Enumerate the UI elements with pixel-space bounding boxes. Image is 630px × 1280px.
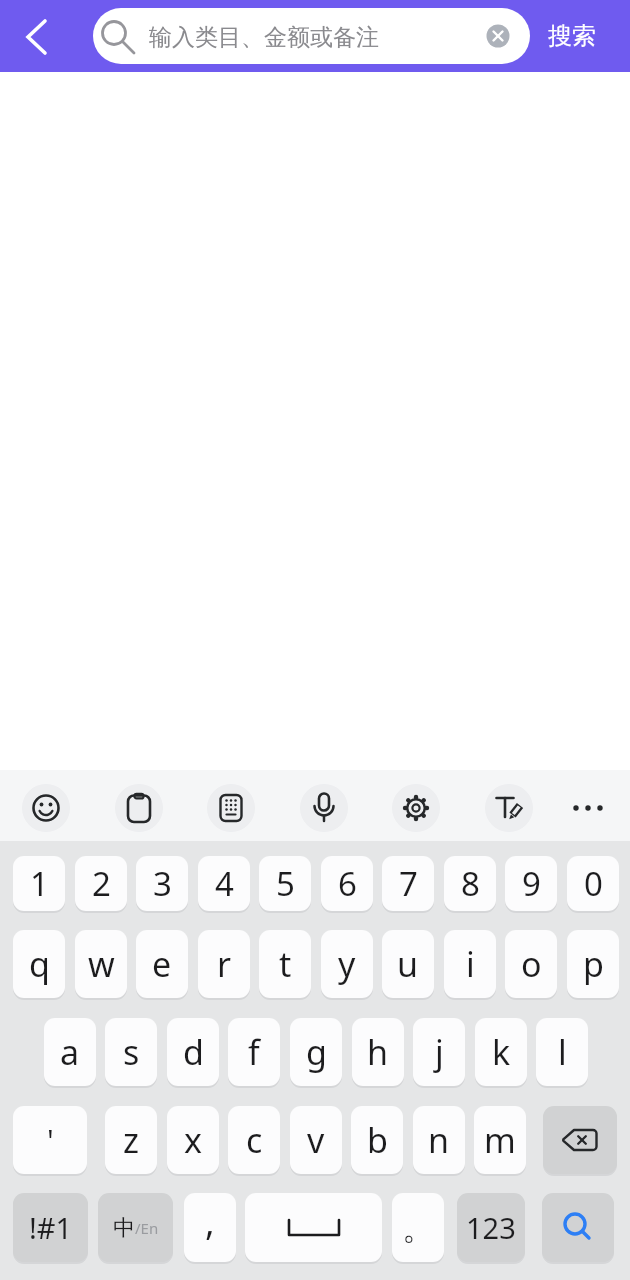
button[interactable]: w — [75, 930, 127, 998]
button[interactable]: 。 — [392, 1193, 444, 1262]
staticText: h — [367, 1029, 389, 1075]
staticText: 9 — [522, 861, 541, 906]
button[interactable]: o — [505, 930, 557, 998]
button[interactable]: a — [44, 1018, 96, 1086]
staticText: x — [184, 1117, 202, 1163]
button[interactable] — [485, 784, 533, 832]
button[interactable]: 3 — [136, 856, 188, 911]
staticText: w — [88, 941, 115, 987]
button[interactable]: x — [167, 1106, 219, 1174]
button[interactable]: d — [167, 1018, 219, 1086]
button[interactable]: b — [351, 1106, 403, 1174]
staticText: 输入类目、金额或备注 — [149, 23, 379, 52]
staticText: 0 — [584, 861, 603, 906]
staticText: t — [279, 941, 292, 987]
staticText: ' — [47, 1120, 54, 1161]
button[interactable] — [22, 784, 70, 832]
staticText: u — [397, 941, 419, 987]
staticText: o — [521, 941, 542, 987]
staticText: y — [338, 941, 356, 987]
staticText: /En — [135, 1218, 159, 1238]
button[interactable] — [115, 784, 163, 832]
button[interactable]: p — [567, 930, 619, 998]
button[interactable]: i — [444, 930, 496, 998]
staticText: p — [583, 941, 604, 987]
button[interactable]: f — [228, 1018, 280, 1086]
staticText: j — [435, 1029, 444, 1075]
button[interactable]: n — [413, 1106, 465, 1174]
button[interactable]: g — [290, 1018, 342, 1086]
button[interactable]: 8 — [444, 856, 496, 911]
staticText: z — [123, 1117, 139, 1163]
staticText: c — [246, 1117, 263, 1163]
button[interactable]: 0 — [567, 856, 619, 911]
button[interactable] — [300, 784, 348, 832]
staticText: 5 — [276, 861, 295, 906]
button[interactable] — [207, 784, 255, 832]
staticText: e — [152, 941, 172, 987]
button[interactable]: m — [474, 1106, 526, 1174]
staticText: 。 — [402, 1207, 435, 1249]
button[interactable]: k — [475, 1018, 527, 1086]
button[interactable]: z — [105, 1106, 157, 1174]
staticText: 6 — [338, 861, 357, 906]
staticText: 4 — [215, 861, 234, 906]
button[interactable] — [542, 1193, 614, 1262]
button[interactable] — [8, 8, 64, 64]
button[interactable]: , — [184, 1193, 236, 1262]
button[interactable]: 6 — [321, 856, 373, 911]
staticText: b — [367, 1117, 388, 1163]
staticText: s — [123, 1029, 140, 1075]
button[interactable] — [564, 784, 612, 832]
button[interactable]: 中 — [98, 1193, 173, 1262]
button[interactable]: 9 — [505, 856, 557, 911]
staticText: f — [248, 1029, 260, 1075]
staticText: i — [466, 941, 475, 987]
button[interactable]: ' — [13, 1106, 87, 1174]
button[interactable] — [543, 1106, 617, 1174]
staticText: 8 — [461, 861, 480, 906]
button[interactable]: t — [259, 930, 311, 998]
button[interactable]: 4 — [198, 856, 250, 911]
staticText: a — [60, 1029, 80, 1075]
button[interactable]: v — [290, 1106, 342, 1174]
staticText: n — [428, 1117, 450, 1163]
staticText: !#1 — [29, 1208, 73, 1247]
button[interactable]: l — [536, 1018, 588, 1086]
staticText: 搜索 — [548, 21, 596, 51]
staticText: 3 — [153, 861, 172, 906]
button[interactable]: h — [352, 1018, 404, 1086]
staticText: k — [492, 1029, 511, 1075]
staticText: 123 — [466, 1208, 516, 1247]
button[interactable] — [392, 784, 440, 832]
button[interactable]: 5 — [259, 856, 311, 911]
staticText: l — [558, 1029, 567, 1075]
staticText: g — [306, 1029, 327, 1075]
button[interactable]: c — [228, 1106, 280, 1174]
staticText: 7 — [399, 861, 418, 906]
staticText: 1 — [30, 861, 49, 906]
button[interactable]: j — [413, 1018, 465, 1086]
button[interactable]: 7 — [382, 856, 434, 911]
button[interactable] — [245, 1193, 382, 1262]
staticText: r — [217, 941, 232, 987]
button[interactable]: 1 — [13, 856, 65, 911]
staticText: , — [205, 1197, 215, 1246]
staticText: 2 — [92, 861, 111, 906]
button[interactable]: r — [198, 930, 250, 998]
staticText: d — [183, 1029, 204, 1075]
staticText: v — [307, 1117, 325, 1163]
button[interactable]: y — [321, 930, 373, 998]
button[interactable]: !#1 — [13, 1193, 88, 1262]
button[interactable]: 2 — [75, 856, 127, 911]
staticText: q — [29, 941, 50, 987]
button[interactable]: 输入类目、金额或备注 — [93, 8, 530, 64]
staticText: 中 — [113, 1214, 135, 1242]
button[interactable]: q — [13, 930, 65, 998]
button[interactable]: s — [105, 1018, 157, 1086]
staticText: m — [484, 1117, 516, 1163]
button[interactable]: 搜索 — [536, 12, 608, 60]
button[interactable]: 123 — [457, 1193, 525, 1262]
button[interactable]: e — [136, 930, 188, 998]
button[interactable]: u — [382, 930, 434, 998]
